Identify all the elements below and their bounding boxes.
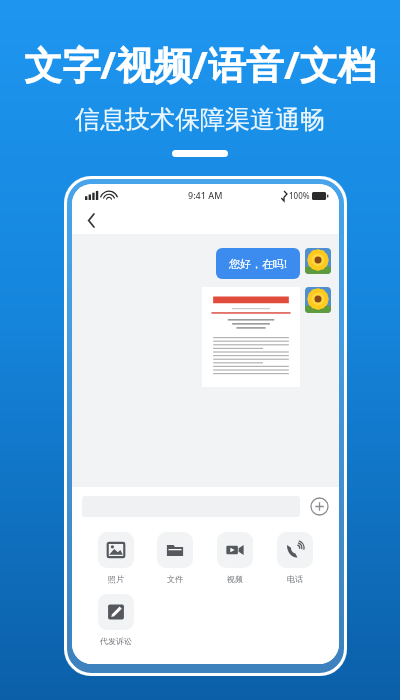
button[interactable]: 照片 bbox=[86, 532, 145, 584]
button[interactable]: 您好，在吗! bbox=[216, 248, 300, 279]
button[interactable]: Document bbox=[202, 287, 300, 387]
staticText: 照片 bbox=[108, 574, 124, 584]
staticText: 9:41 AM bbox=[188, 189, 223, 201]
staticText: 信息技术保障渠道通畅 bbox=[75, 104, 325, 135]
staticText: 文件 bbox=[167, 574, 183, 584]
staticText: 电话 bbox=[287, 574, 303, 584]
button[interactable]: 电话 bbox=[265, 532, 325, 584]
staticText: 文字/视频/语音/文档 bbox=[24, 38, 376, 90]
button[interactable]: 视频 bbox=[205, 532, 265, 584]
staticText: 视频 bbox=[227, 574, 243, 584]
staticText: 代发诉讼 bbox=[100, 636, 132, 646]
button[interactable]: 文件 bbox=[145, 532, 205, 584]
button[interactable]: More bbox=[310, 497, 329, 516]
staticText: 您好，在吗! bbox=[229, 256, 287, 271]
button[interactable]: Avatar bbox=[305, 248, 331, 274]
button[interactable]: Back bbox=[80, 209, 102, 231]
button[interactable]: 代发诉讼 bbox=[86, 594, 146, 646]
staticText: 100% bbox=[289, 190, 310, 201]
button[interactable]: Avatar bbox=[305, 287, 331, 313]
